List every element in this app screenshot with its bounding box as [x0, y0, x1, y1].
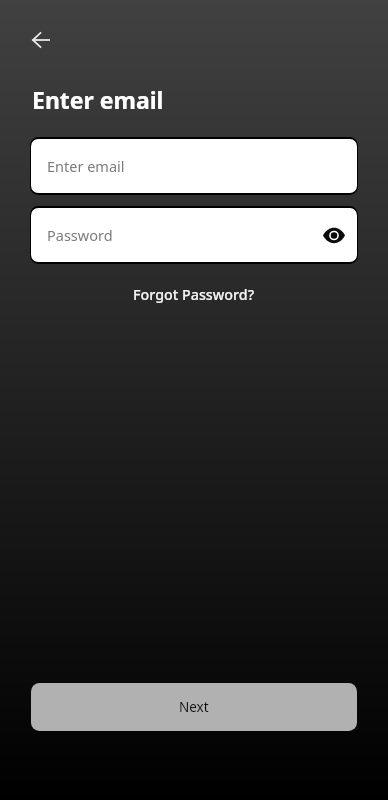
staticText: Next	[179, 698, 209, 716]
staticText: Enter email	[32, 84, 164, 115]
button[interactable]: Enter email	[31, 139, 357, 193]
button[interactable]: Show password	[319, 220, 349, 250]
button[interactable]: Back	[17, 16, 65, 64]
staticText: Password	[47, 225, 113, 245]
button[interactable]: Forgot Password?	[123, 281, 265, 308]
staticText: Forgot Password?	[133, 285, 255, 304]
button[interactable]: Password	[31, 208, 357, 262]
button[interactable]: Next	[31, 683, 357, 731]
staticText: Enter email	[47, 156, 125, 176]
